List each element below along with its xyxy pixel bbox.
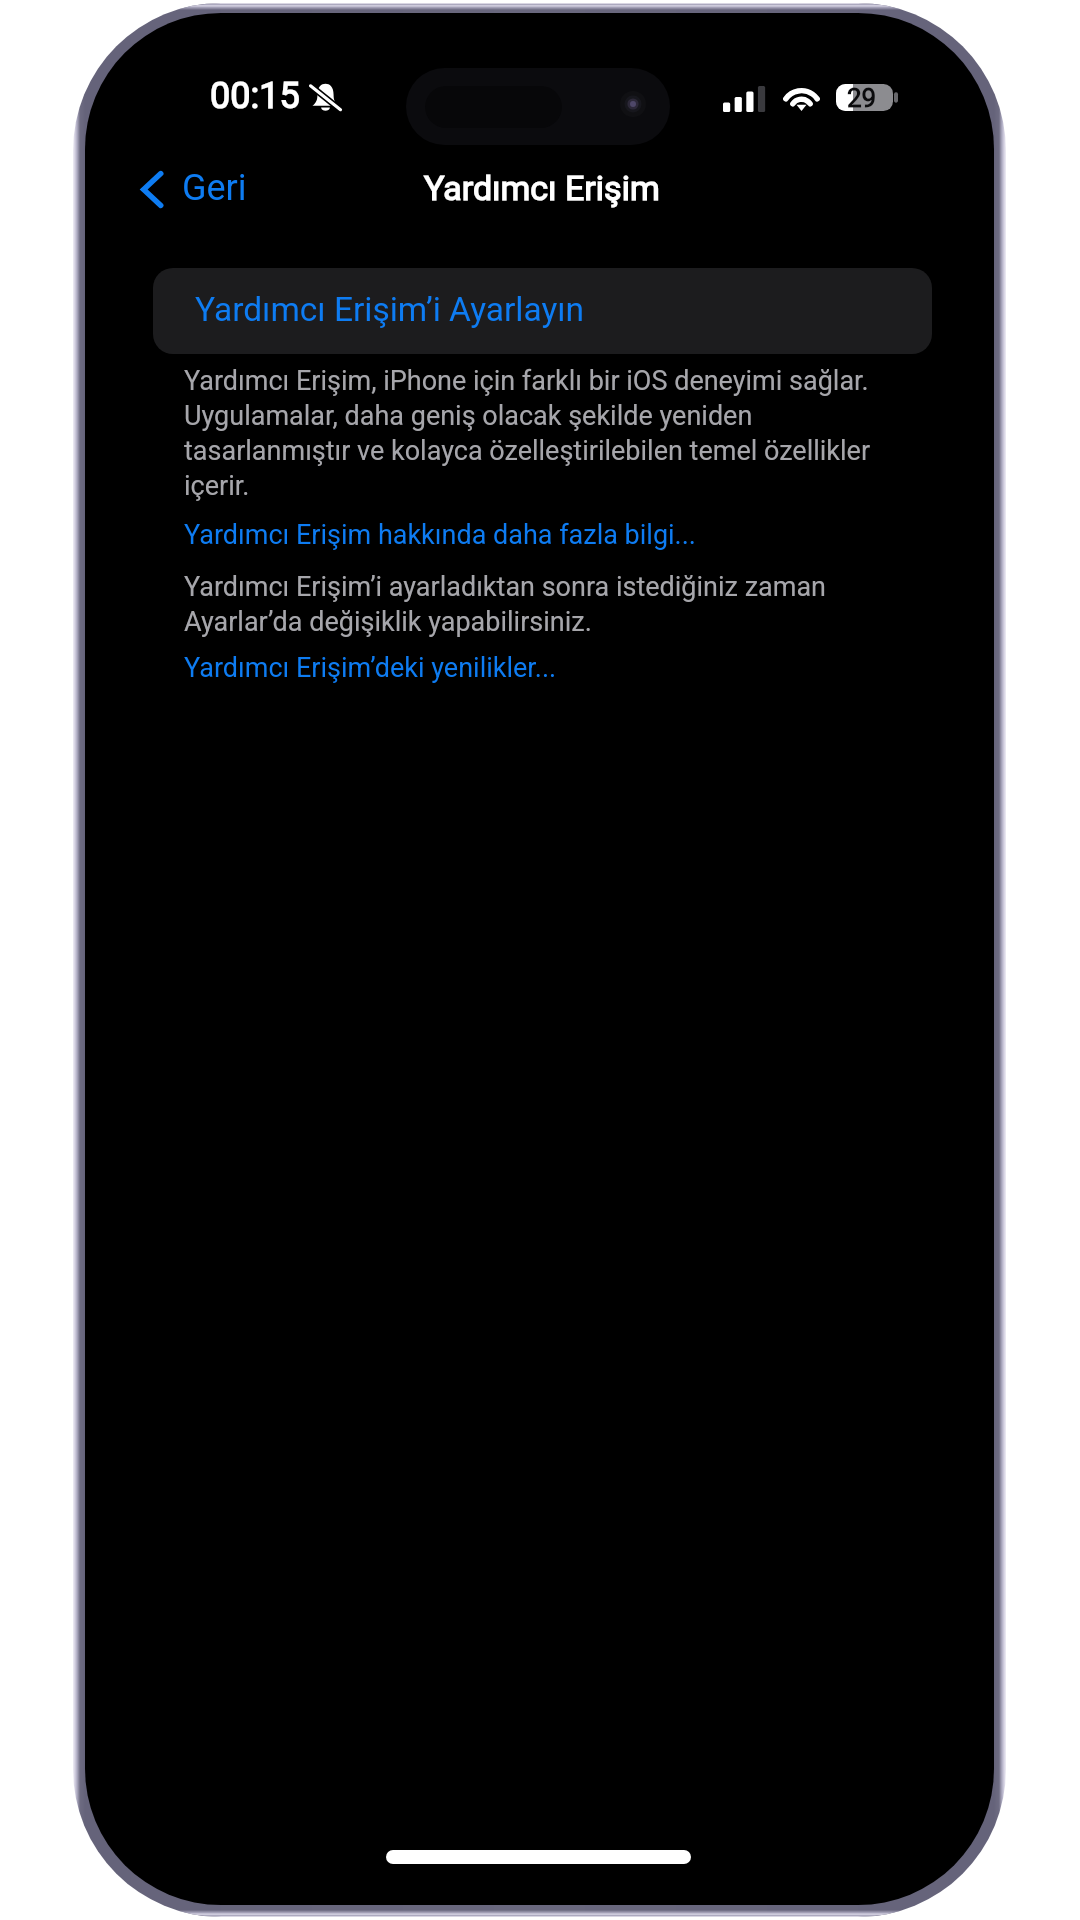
button[interactable]: Yardımcı Erişim’deki yenilikler...: [184, 652, 557, 684]
staticText: Yardımcı Erişim’i Ayarlayın: [195, 290, 585, 329]
staticText: Yardımcı Erişim hakkında daha fazla bilg…: [184, 519, 696, 551]
staticText: 00:15: [210, 75, 300, 117]
staticText: Yardımcı Erişim’deki yenilikler...: [184, 652, 557, 684]
staticText: Geri: [182, 167, 247, 209]
button[interactable]: Geri: [129, 158, 261, 220]
button[interactable]: Yardımcı Erişim’i Ayarlayın: [153, 268, 932, 354]
staticText: Yardımcı Erişim, iPhone için farklı bir …: [184, 365, 896, 502]
staticText: Yardımcı Erişim: [424, 168, 660, 208]
staticText: Yardımcı Erişim’i ayarladıktan sonra ist…: [184, 571, 896, 638]
staticText: 29: [847, 83, 877, 110]
button[interactable]: Yardımcı Erişim hakkında daha fazla bilg…: [184, 519, 696, 551]
